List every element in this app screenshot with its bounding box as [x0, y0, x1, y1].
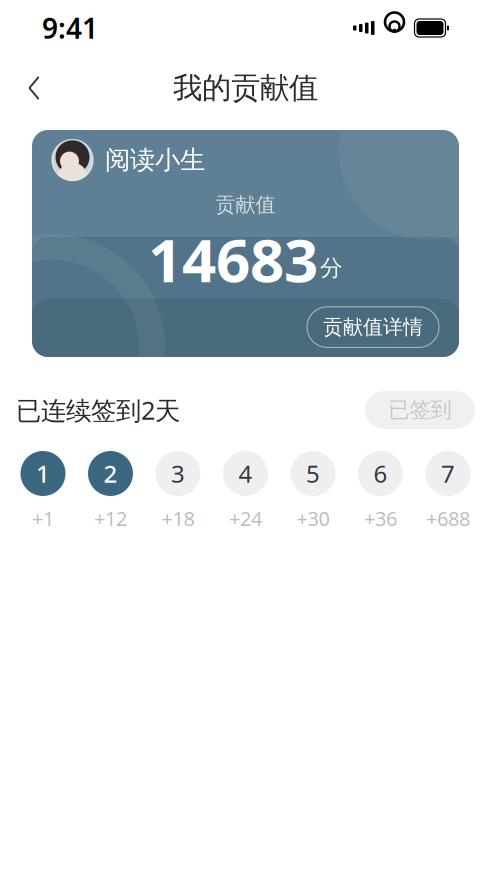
staticText: 贡献值详情: [323, 315, 423, 339]
staticText: 我的贡献值: [173, 70, 318, 106]
staticText: 贡献值: [215, 193, 275, 217]
staticText: 1: [36, 458, 50, 489]
staticText: +1: [32, 505, 54, 532]
staticText: 7: [441, 458, 455, 489]
staticText: +30: [296, 505, 329, 532]
staticText: 2: [103, 458, 117, 489]
staticText: +12: [94, 505, 127, 532]
staticText: 已连续签到2天: [16, 393, 180, 427]
staticText: +36: [364, 505, 397, 532]
staticText: 4: [238, 458, 252, 489]
staticText: 5: [306, 458, 320, 489]
staticText: 分: [320, 254, 343, 282]
staticText: 9:41: [42, 9, 98, 47]
staticText: 6: [373, 458, 387, 489]
button[interactable]: 已签到: [365, 391, 475, 429]
staticText: 阅读小生: [105, 144, 205, 176]
staticText: +688: [426, 505, 470, 532]
staticText: +24: [229, 505, 262, 532]
staticText: 已签到: [388, 397, 451, 423]
button[interactable]: 贡献值详情: [307, 307, 439, 347]
staticText: 3: [171, 458, 185, 489]
staticText: +18: [161, 505, 194, 532]
button[interactable]: 返回: [8, 62, 60, 114]
staticText: 14683: [148, 219, 318, 299]
